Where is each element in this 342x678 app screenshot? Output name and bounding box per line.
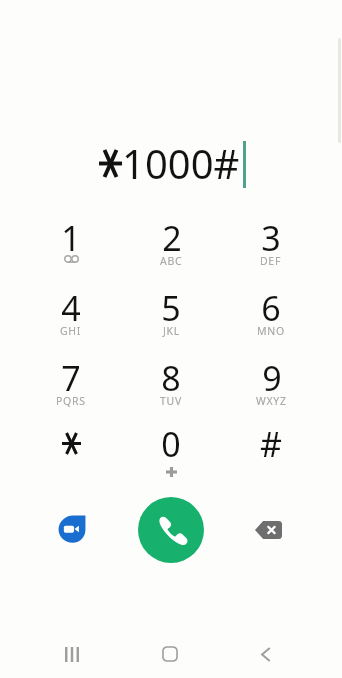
staticText: 6 (261, 285, 281, 331)
button[interactable]: Video call (43, 502, 99, 558)
staticText: JKL (163, 324, 180, 338)
staticText: 0 (161, 421, 181, 467)
staticText: 1 (61, 215, 81, 261)
button[interactable]: Backspace (243, 502, 299, 558)
button[interactable]: 1 (21, 215, 121, 285)
staticText: GHI (60, 324, 82, 338)
button[interactable]: Recent apps (21, 632, 121, 676)
button[interactable]: 3 (221, 215, 321, 285)
button[interactable]: Home (121, 632, 221, 676)
button[interactable]: 0 (121, 421, 221, 491)
button[interactable]: 7 (21, 355, 121, 421)
staticText: ABC (160, 254, 183, 268)
staticText: 7 (61, 355, 81, 401)
button[interactable]: 5 (121, 285, 221, 355)
staticText: # (260, 421, 282, 467)
staticText: 5 (161, 285, 181, 331)
staticText: 1000# (122, 136, 240, 190)
button[interactable]: 2 (121, 215, 221, 285)
button[interactable] (21, 421, 121, 491)
staticText: DEF (260, 254, 282, 268)
staticText: TUV (160, 394, 182, 408)
button[interactable]: 6 (221, 285, 321, 355)
staticText: MNO (257, 324, 285, 338)
staticText: 8 (161, 355, 181, 401)
button[interactable]: 9 (221, 355, 321, 421)
button[interactable]: 4 (21, 285, 121, 355)
staticText: 4 (61, 285, 81, 331)
staticText: WXYZ (256, 394, 287, 408)
button[interactable]: # (221, 421, 321, 491)
button[interactable]: Back (221, 632, 321, 676)
button[interactable]: Call (138, 497, 204, 563)
button[interactable]: 8 (121, 355, 221, 421)
staticText: 3 (261, 215, 281, 261)
staticText: PQRS (56, 394, 86, 408)
staticText: 9 (262, 355, 282, 401)
staticText: 2 (162, 215, 182, 261)
